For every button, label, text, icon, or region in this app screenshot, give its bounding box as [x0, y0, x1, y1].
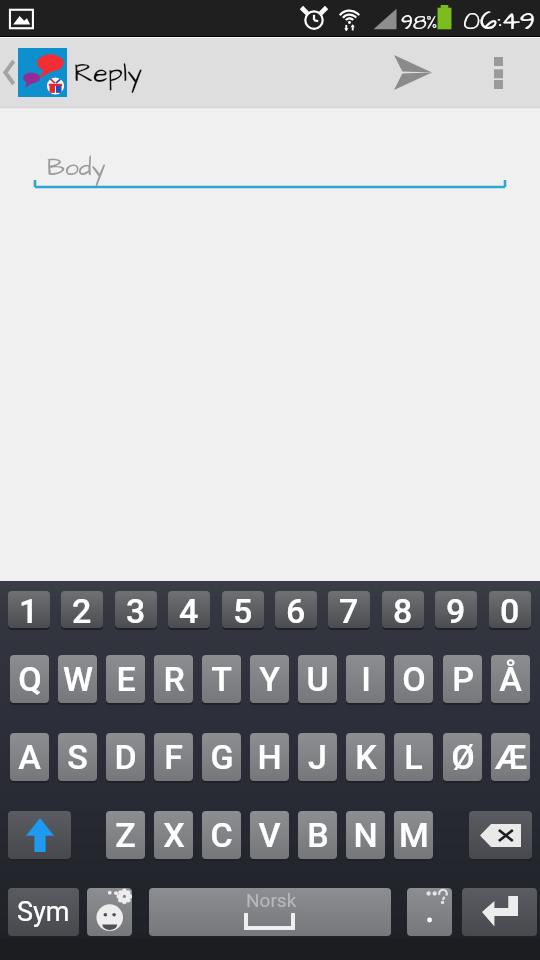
button[interactable]: Z	[106, 811, 145, 859]
staticText: A	[18, 737, 41, 777]
staticText: 98%	[401, 8, 438, 37]
staticText: Sym	[17, 896, 70, 928]
staticText: P	[452, 659, 474, 699]
staticText: Æ	[495, 737, 527, 777]
button[interactable]: Space	[149, 888, 391, 936]
staticText: N	[353, 815, 378, 855]
button[interactable]: R	[154, 655, 193, 703]
staticText: 0	[500, 591, 520, 628]
staticText: 9	[446, 591, 466, 628]
staticText: W	[63, 659, 93, 699]
button[interactable]: 4	[168, 591, 210, 628]
staticText: K	[355, 737, 377, 777]
staticText: Body	[47, 150, 106, 185]
button[interactable]: Send	[376, 38, 450, 107]
button[interactable]: I	[346, 655, 385, 703]
button[interactable]: Q	[10, 655, 49, 703]
button[interactable]: Sym	[8, 888, 79, 936]
button[interactable]: Shift	[8, 811, 71, 859]
button[interactable]: Backspace	[469, 811, 532, 859]
button[interactable]: 3	[115, 591, 157, 628]
staticText: 4	[179, 591, 199, 628]
staticText: C	[210, 815, 233, 855]
staticText: 6	[286, 591, 306, 628]
button[interactable]: Period	[407, 888, 452, 936]
staticText: Å	[499, 659, 522, 699]
button[interactable]: A	[10, 733, 49, 781]
staticText: Reply	[74, 54, 142, 92]
button[interactable]: 5	[222, 591, 264, 628]
staticText: 06:49	[463, 2, 536, 38]
button[interactable]: O	[394, 655, 433, 703]
staticText: 3	[126, 591, 146, 628]
button[interactable]: 0	[489, 591, 531, 628]
staticText: M	[399, 815, 429, 855]
staticText: G	[210, 737, 234, 777]
button[interactable]: 7	[328, 591, 370, 628]
staticText: I	[361, 659, 371, 699]
button[interactable]: 8	[382, 591, 424, 628]
button[interactable]: X	[154, 811, 193, 859]
button[interactable]: Reply	[0, 48, 142, 97]
staticText: 1	[19, 591, 39, 628]
button[interactable]: G	[202, 733, 241, 781]
button[interactable]: Æ	[491, 733, 530, 781]
button[interactable]: D	[106, 733, 145, 781]
button[interactable]: B	[298, 811, 337, 859]
button[interactable]: 2	[61, 591, 103, 628]
button[interactable]: P	[443, 655, 482, 703]
staticText: B	[307, 815, 329, 855]
staticText: 8	[393, 591, 413, 628]
staticText: J	[308, 737, 327, 777]
staticText: R	[163, 659, 185, 699]
button[interactable]: F	[154, 733, 193, 781]
staticText: 7	[339, 591, 359, 628]
button[interactable]: Enter	[462, 888, 537, 936]
button[interactable]: Emoji	[87, 888, 132, 936]
button[interactable]: H	[250, 733, 289, 781]
button[interactable]: 1	[8, 591, 50, 628]
button[interactable]: M	[394, 811, 433, 859]
button[interactable]: U	[298, 655, 337, 703]
staticText: 2	[72, 591, 92, 628]
staticText: O	[402, 659, 426, 699]
button[interactable]: T	[202, 655, 241, 703]
button[interactable]: J	[298, 733, 337, 781]
button[interactable]: V	[250, 811, 289, 859]
button[interactable]: E	[106, 655, 145, 703]
button[interactable]: 6	[275, 591, 317, 628]
button[interactable]: Å	[491, 655, 530, 703]
staticText: S	[67, 737, 88, 777]
button[interactable]: N	[346, 811, 385, 859]
staticText: Q	[18, 659, 42, 699]
staticText: Y	[259, 659, 280, 699]
staticText: E	[116, 659, 136, 699]
staticText: Z	[115, 815, 136, 855]
staticText: Ø	[451, 737, 475, 777]
staticText: D	[114, 737, 137, 777]
button[interactable]: More options	[471, 38, 525, 107]
button[interactable]: K	[346, 733, 385, 781]
button[interactable]: W	[58, 655, 97, 703]
button[interactable]: Y	[250, 655, 289, 703]
staticText: U	[306, 659, 329, 699]
button[interactable]: L	[394, 733, 433, 781]
button[interactable]: C	[202, 811, 241, 859]
button[interactable]: Ø	[443, 733, 482, 781]
staticText: Norsk	[246, 889, 297, 911]
staticText: X	[163, 815, 185, 855]
staticText: H	[257, 737, 282, 777]
button[interactable]: 9	[435, 591, 477, 628]
staticText: V	[258, 815, 281, 855]
staticText: L	[404, 737, 423, 777]
staticText: 5	[233, 591, 253, 628]
staticText: F	[164, 737, 183, 777]
staticText: T	[211, 659, 232, 699]
button[interactable]: S	[58, 733, 97, 781]
